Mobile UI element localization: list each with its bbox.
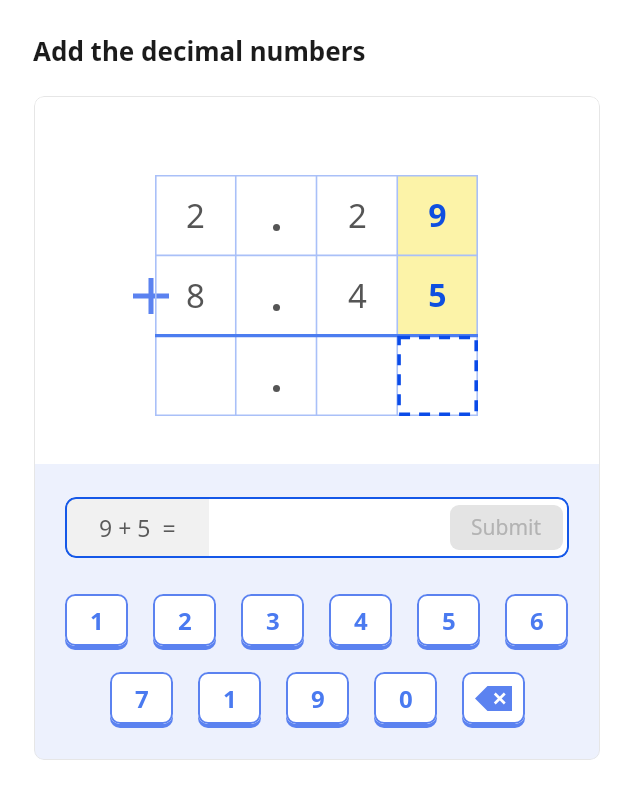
button[interactable]: 2 [317, 175, 398, 255]
button[interactable]: 0 [374, 672, 437, 724]
button[interactable]: 4 [317, 255, 398, 335]
staticText: 0 [399, 682, 413, 715]
staticText: 9 [311, 682, 325, 715]
button[interactable]: 6 [505, 594, 568, 646]
staticText: 1 [223, 682, 237, 715]
staticText: Submit [471, 513, 542, 542]
button[interactable]: 9 [286, 672, 349, 724]
button[interactable]: Submit [450, 505, 563, 550]
button[interactable]: 8 [155, 255, 236, 335]
button[interactable]: 9 + 5 = [65, 497, 569, 558]
staticText: 6 [530, 604, 544, 637]
staticText: 7 [135, 682, 149, 715]
button[interactable]: 1 [65, 594, 128, 646]
button[interactable]: 2 [155, 175, 236, 255]
staticText: 5 [442, 604, 456, 637]
staticText: 2 [186, 193, 205, 238]
staticText: 9 [428, 193, 447, 237]
button[interactable]: 9 [397, 175, 478, 255]
staticText: 5 [428, 273, 447, 317]
button[interactable]: 1 [198, 672, 261, 724]
button[interactable]: 2 [153, 594, 216, 646]
button[interactable]: 3 [241, 594, 304, 646]
staticText: 8 [186, 273, 205, 318]
staticText: Add the decimal numbers [33, 33, 366, 68]
staticText: 2 [178, 604, 192, 637]
button[interactable]: 7 [110, 672, 173, 724]
button[interactable]: 5 [397, 255, 478, 335]
button[interactable]: 4 [329, 594, 392, 646]
staticText: 3 [266, 604, 280, 637]
staticText: 1 [90, 604, 104, 637]
staticText: 9 + 5 = [99, 512, 176, 543]
staticText: 2 [348, 193, 367, 238]
button[interactable]: 5 [417, 594, 480, 646]
button[interactable]: Backspace [462, 672, 525, 724]
staticText: 4 [348, 273, 367, 318]
staticText: 4 [354, 604, 368, 637]
